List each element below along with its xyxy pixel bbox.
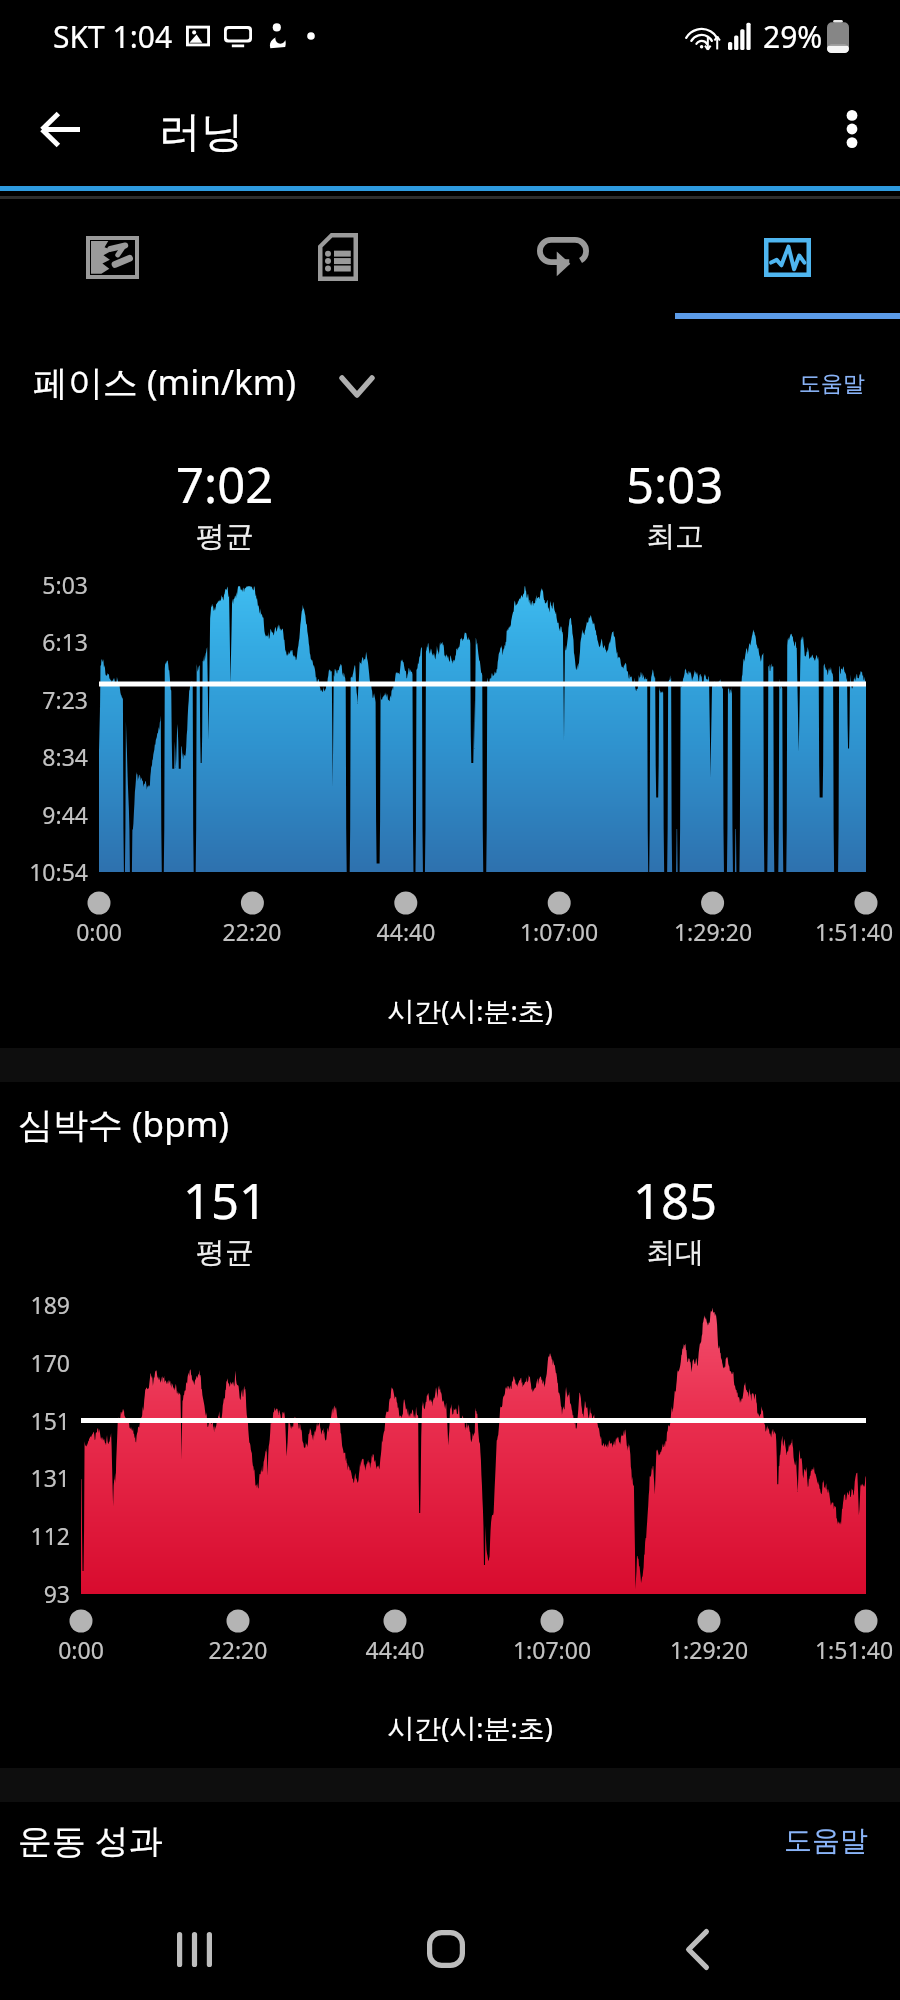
staticText: 1:51:40 bbox=[754, 916, 900, 947]
button[interactable]: Home bbox=[386, 1897, 506, 2000]
staticText: 평균 bbox=[196, 518, 254, 555]
staticText: 도움말 bbox=[784, 1823, 868, 1858]
staticText: 시간(시:분:초) bbox=[20, 992, 900, 1029]
button[interactable]: More options bbox=[804, 72, 900, 186]
staticText: 도움말 bbox=[799, 370, 865, 398]
staticText: 93 bbox=[0, 1578, 70, 1609]
staticText: 5:03 bbox=[0, 569, 88, 600]
button[interactable]: Change chart metric bbox=[317, 351, 397, 421]
staticText: 151 bbox=[183, 1167, 268, 1234]
staticText: 시간(시:분:초) bbox=[20, 1709, 900, 1746]
button[interactable]: 운동 성과 bbox=[0, 1794, 900, 1886]
staticText: 0:00 bbox=[0, 916, 199, 947]
staticText: 7:23 bbox=[0, 684, 88, 715]
staticText: 0:00 bbox=[0, 1634, 181, 1665]
staticText: 평균 bbox=[196, 1234, 254, 1271]
staticText: 151 bbox=[0, 1405, 70, 1436]
staticText: 22:20 bbox=[138, 1634, 338, 1665]
staticText: 심박수 (bpm) bbox=[18, 1100, 229, 1148]
staticText: 185 bbox=[633, 1167, 718, 1234]
staticText: 112 bbox=[0, 1520, 70, 1551]
staticText: 170 bbox=[0, 1347, 70, 1378]
staticText: 6:13 bbox=[0, 626, 88, 657]
staticText: 44:40 bbox=[295, 1634, 495, 1665]
button[interactable]: Details bbox=[225, 199, 450, 319]
staticText: 29% bbox=[763, 16, 823, 57]
staticText: 최고 bbox=[646, 518, 704, 555]
staticText: 10:54 bbox=[0, 856, 88, 887]
staticText: 1:07:00 bbox=[452, 1634, 652, 1665]
staticText: 최대 bbox=[646, 1234, 704, 1271]
button[interactable]: Back bbox=[0, 72, 120, 186]
staticText: 1:51:40 bbox=[754, 1634, 900, 1665]
staticText: 페이스 (min/km) bbox=[33, 358, 296, 406]
staticText: 5:03 bbox=[626, 451, 724, 518]
button[interactable]: Laps bbox=[450, 199, 675, 319]
staticText: 22:20 bbox=[152, 916, 352, 947]
staticText: 1:07:00 bbox=[459, 916, 659, 947]
staticText: 189 bbox=[0, 1289, 70, 1320]
staticText: 러닝 bbox=[159, 106, 243, 159]
staticText: 1:29:20 bbox=[613, 916, 813, 947]
staticText: 7:02 bbox=[176, 451, 274, 518]
staticText: 8:34 bbox=[0, 741, 88, 772]
staticText: 1:29:20 bbox=[609, 1634, 809, 1665]
staticText: SKT 1:04 bbox=[53, 16, 173, 57]
staticText: 9:44 bbox=[0, 799, 88, 830]
button[interactable]: Recents bbox=[134, 1897, 254, 2000]
staticText: 131 bbox=[0, 1462, 70, 1493]
button[interactable]: Back bbox=[637, 1897, 757, 2000]
button[interactable]: Route map bbox=[0, 199, 225, 319]
button[interactable]: Charts bbox=[675, 199, 900, 319]
staticText: 44:40 bbox=[306, 916, 506, 947]
button[interactable]: Help bbox=[791, 362, 873, 406]
staticText: 운동 성과 bbox=[18, 1817, 163, 1863]
